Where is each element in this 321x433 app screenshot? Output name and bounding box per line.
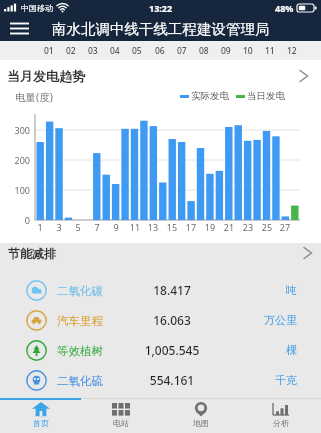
staticText: 09 <box>221 45 231 57</box>
button[interactable]: 电站 <box>81 398 161 433</box>
staticText: 25 <box>258 221 276 233</box>
staticText: 0 <box>0 214 30 226</box>
button[interactable]: 02 <box>61 45 81 57</box>
staticText: 11 <box>265 45 275 57</box>
staticText: 19 <box>201 221 219 233</box>
button[interactable]: 地图 <box>161 398 241 433</box>
staticText: 554.161 <box>132 372 212 388</box>
staticText: 千克 <box>275 373 297 387</box>
staticText: 08 <box>199 45 209 57</box>
button[interactable]: 06 <box>150 45 170 57</box>
button[interactable]: 等效植树 <box>0 335 321 365</box>
button[interactable]: 11 <box>260 45 280 57</box>
button[interactable]: 分析 <box>241 398 321 433</box>
button[interactable]: 12 <box>282 45 302 57</box>
staticText: 分析 <box>273 418 289 428</box>
staticText: 05 <box>132 45 142 57</box>
staticText: 电量(度) <box>15 90 53 104</box>
staticText: 100 <box>0 184 30 196</box>
staticText: 当月发电趋势 <box>7 68 85 84</box>
staticText: 9 <box>107 221 125 233</box>
staticText: 电站 <box>113 418 129 428</box>
button[interactable]: 09 <box>216 45 236 57</box>
staticText: 13:22 <box>149 2 173 14</box>
button[interactable]: 08 <box>194 45 214 57</box>
staticText: 18.417 <box>132 282 212 298</box>
staticText: 04 <box>110 45 120 57</box>
staticText: 当日发电 <box>247 90 285 102</box>
staticText: 地图 <box>193 418 209 428</box>
staticText: 10 <box>243 45 253 57</box>
staticText: 02 <box>66 45 76 57</box>
button[interactable]: 节能减排 <box>8 243 313 263</box>
staticText: 11 <box>126 221 144 233</box>
button[interactable]: 01 <box>39 45 59 57</box>
staticText: 23 <box>239 221 257 233</box>
staticText: 03 <box>88 45 98 57</box>
staticText: 棵 <box>286 343 297 357</box>
staticText: 首页 <box>33 418 49 428</box>
button[interactable]: 首页 <box>0 398 81 433</box>
button[interactable]: 05 <box>127 45 147 57</box>
button[interactable]: 10 <box>238 45 258 57</box>
staticText: 21 <box>220 221 238 233</box>
staticText: 48% <box>275 2 294 14</box>
staticText: 01 <box>44 45 54 57</box>
staticText: 3 <box>50 221 68 233</box>
staticText: 南水北调中线干线工程建设管理局 <box>52 20 270 38</box>
staticText: 中国移动 <box>21 3 53 13</box>
staticText: 二氧化碳 <box>57 284 103 298</box>
button[interactable]: 二氧化碳 <box>0 275 321 305</box>
staticText: 200 <box>0 154 30 166</box>
button[interactable]: 04 <box>105 45 125 57</box>
button[interactable]: 07 <box>172 45 192 57</box>
staticText: 5 <box>69 221 87 233</box>
staticText: 吨 <box>286 283 297 297</box>
staticText: 15 <box>163 221 181 233</box>
staticText: 汽车里程 <box>57 314 103 328</box>
staticText: 实际发电 <box>191 90 229 102</box>
button[interactable] <box>10 22 29 35</box>
staticText: 06 <box>155 45 165 57</box>
staticText: 节能减排 <box>8 246 56 261</box>
button[interactable]: 汽车里程 <box>0 305 321 335</box>
staticText: 12 <box>287 45 297 57</box>
staticText: 等效植树 <box>57 344 103 358</box>
button[interactable]: 当月发电趋势 <box>7 68 309 84</box>
staticText: 16.063 <box>132 312 212 328</box>
staticText: 1,005.545 <box>132 342 212 358</box>
staticText: 7 <box>88 221 106 233</box>
staticText: 17 <box>182 221 200 233</box>
staticText: 27 <box>276 221 294 233</box>
staticText: 13 <box>144 221 162 233</box>
button[interactable]: 二氧化硫 <box>0 365 321 395</box>
staticText: 万公里 <box>264 313 297 327</box>
staticText: 300 <box>0 124 30 136</box>
staticText: 1 <box>31 221 49 233</box>
staticText: 二氧化硫 <box>57 374 103 388</box>
button[interactable]: 03 <box>83 45 103 57</box>
staticText: 07 <box>177 45 187 57</box>
